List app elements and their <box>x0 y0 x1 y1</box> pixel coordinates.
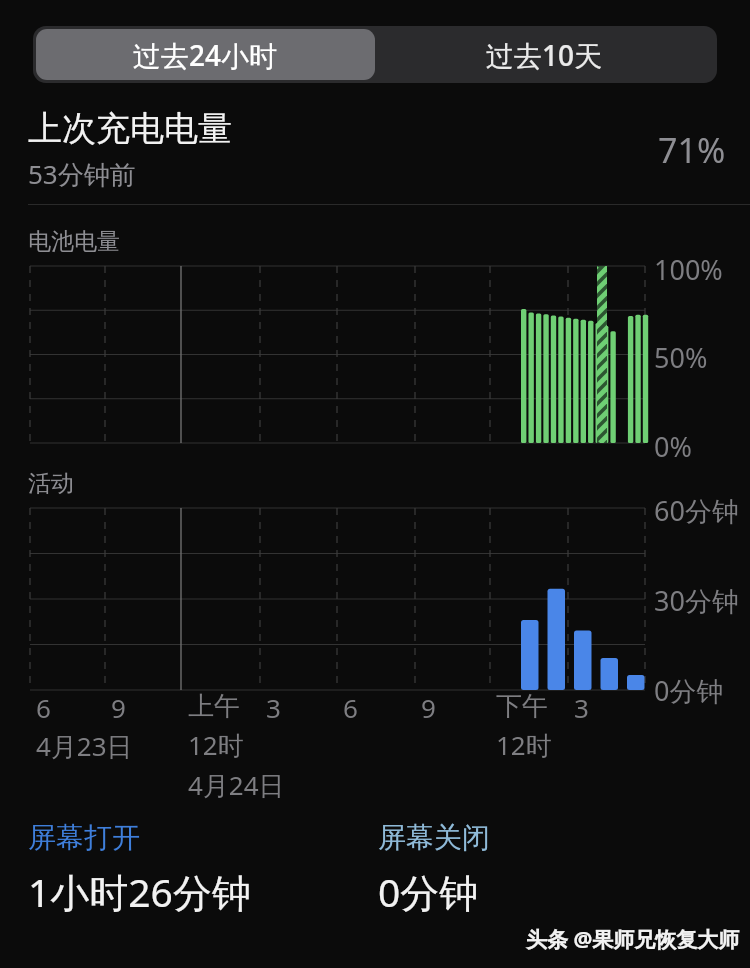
staticText: 6 <box>343 690 358 725</box>
staticText: 下午 <box>496 690 548 723</box>
staticText: 上次充电电量 <box>28 107 232 150</box>
staticText: 6 <box>36 690 51 725</box>
staticText: 9 <box>111 690 126 725</box>
staticText: 0% <box>654 428 692 465</box>
staticText: 屏幕关闭 <box>378 820 490 855</box>
staticText: 过去24小时 <box>133 36 278 74</box>
staticText: 53分钟前 <box>28 156 136 192</box>
staticText: 12时 <box>496 727 552 763</box>
staticText: 60分钟 <box>654 492 739 529</box>
button[interactable]: 过去10天 <box>375 29 714 80</box>
staticText: 4月23日 <box>36 728 133 764</box>
button[interactable]: 屏幕关闭 <box>378 820 490 918</box>
staticText: 100% <box>654 251 723 288</box>
staticText: 3 <box>266 690 281 725</box>
staticText: 9 <box>421 690 436 725</box>
staticText: 4月24日 <box>188 767 285 802</box>
staticText: 电池电量 <box>28 227 120 256</box>
staticText: 12时 <box>188 727 244 763</box>
staticText: 30分钟 <box>654 582 739 619</box>
staticText: 活动 <box>28 469 74 498</box>
staticText: 0分钟 <box>378 865 479 918</box>
staticText: 71% <box>658 127 726 173</box>
button[interactable]: 过去24小时 <box>36 29 375 80</box>
staticText: 上午 <box>188 690 240 723</box>
button[interactable]: 上次充电电量 <box>28 107 726 192</box>
staticText: 50% <box>654 339 708 376</box>
staticText: 过去10天 <box>486 36 603 74</box>
staticText: 屏幕打开 <box>28 820 140 855</box>
staticText: 3 <box>574 690 589 725</box>
staticText: 0分钟 <box>654 672 724 709</box>
staticText: 头条 @果师兄恢复大师 <box>526 925 740 954</box>
staticText: 1小时26分钟 <box>28 865 251 918</box>
button[interactable]: 屏幕打开 <box>28 820 378 918</box>
